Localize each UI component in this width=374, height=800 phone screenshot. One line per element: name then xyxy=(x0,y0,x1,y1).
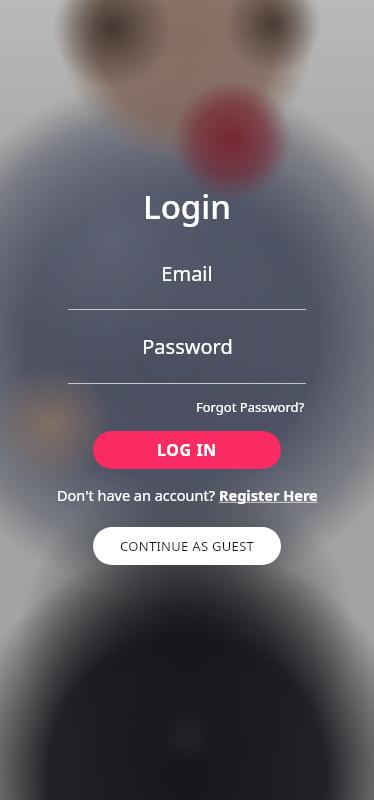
button[interactable]: Forgot Password? xyxy=(194,395,307,419)
staticText: Register Here xyxy=(219,485,318,505)
button[interactable]: LOG IN xyxy=(93,431,281,469)
staticText: Login xyxy=(143,184,231,229)
staticText: LOG IN xyxy=(157,439,217,461)
button[interactable]: CONTINUE AS GUEST xyxy=(93,527,281,565)
staticText: Email xyxy=(161,260,213,287)
staticText: Don't have an account? xyxy=(57,485,219,505)
button[interactable]: Password xyxy=(68,333,306,384)
staticText: Forgot Password? xyxy=(196,398,305,416)
button[interactable]: Email xyxy=(68,260,306,310)
staticText: Password xyxy=(142,333,233,360)
button[interactable]: Register Here xyxy=(219,485,318,505)
staticText: CONTINUE AS GUEST xyxy=(120,537,255,555)
